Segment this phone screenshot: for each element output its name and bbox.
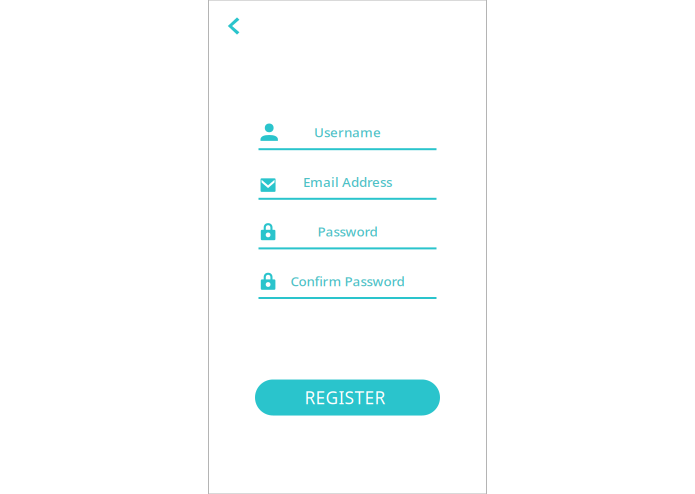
staticText: Username	[314, 123, 381, 141]
button[interactable]: Email Address	[258, 176, 436, 204]
button[interactable]: Back	[217, 10, 249, 42]
staticText: Email Address	[303, 173, 392, 191]
staticText: Password	[317, 222, 377, 240]
button[interactable]: Confirm Password	[258, 275, 436, 303]
staticText: REGISTER	[304, 386, 390, 409]
button[interactable]: REGISTER	[255, 379, 440, 415]
button[interactable]: Password	[258, 225, 436, 253]
button[interactable]: Username	[258, 126, 436, 154]
staticText: Confirm Password	[290, 272, 404, 290]
